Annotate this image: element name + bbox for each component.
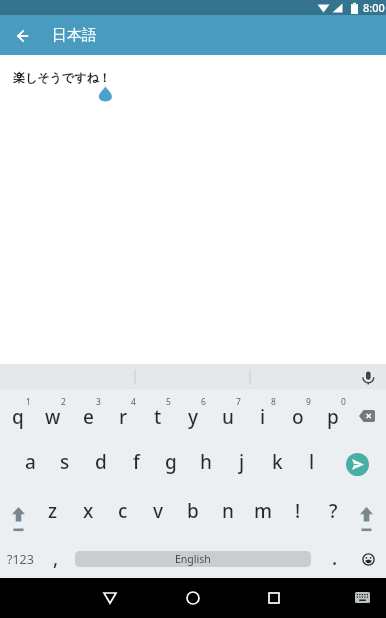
button[interactable]: x	[71, 491, 105, 531]
button[interactable]	[1, 498, 36, 540]
button[interactable]: a	[13, 442, 47, 482]
staticText: h	[200, 449, 212, 475]
staticText: 日本語	[52, 26, 97, 45]
button[interactable]: n	[211, 491, 245, 531]
button[interactable]: h	[189, 442, 223, 482]
button[interactable]	[7, 20, 38, 51]
staticText: j	[239, 449, 245, 475]
button[interactable]: English	[75, 551, 311, 567]
button[interactable]: b	[176, 491, 210, 531]
staticText: e	[83, 404, 94, 430]
button[interactable]	[256, 580, 292, 616]
staticText: l	[309, 449, 315, 475]
staticText: 8	[271, 396, 276, 408]
staticText: 8:00	[363, 0, 385, 15]
staticText: i	[260, 404, 266, 430]
button[interactable]: ?123	[3, 542, 38, 576]
staticText: o	[292, 404, 304, 430]
staticText: m	[254, 498, 272, 524]
staticText: 7	[236, 396, 241, 408]
button[interactable]: d	[84, 442, 118, 482]
button[interactable]	[349, 498, 384, 540]
button[interactable]: .	[318, 538, 352, 578]
button[interactable]: q	[1, 397, 35, 437]
button[interactable]: ?	[316, 491, 350, 531]
staticText: t	[154, 404, 162, 430]
staticText: k	[272, 449, 283, 475]
staticText: 4	[131, 396, 136, 408]
staticText: n	[222, 498, 234, 524]
staticText: g	[165, 449, 177, 475]
button[interactable]	[0, 364, 386, 389]
staticText: x	[83, 498, 94, 524]
button[interactable]	[349, 396, 385, 436]
staticText: w	[45, 404, 61, 430]
button[interactable]: e	[71, 397, 105, 437]
button[interactable]: s	[48, 442, 82, 482]
button[interactable]: !	[281, 491, 315, 531]
staticText: r	[119, 404, 128, 430]
staticText: 0	[341, 396, 346, 408]
button[interactable]: g	[154, 442, 188, 482]
button[interactable]: r	[106, 397, 140, 437]
staticText: ,	[53, 545, 59, 571]
button[interactable]: j	[225, 442, 259, 482]
button[interactable]: l	[295, 442, 329, 482]
staticText: ?123	[7, 551, 34, 568]
staticText: f	[133, 449, 140, 475]
button[interactable]	[351, 542, 385, 576]
staticText: z	[48, 498, 58, 524]
button[interactable]: k	[260, 442, 294, 482]
staticText: 6	[201, 396, 206, 408]
staticText: v	[153, 498, 164, 524]
staticText: English	[175, 552, 211, 566]
staticText: 楽しそうですね！	[13, 70, 111, 85]
staticText: s	[60, 449, 70, 475]
staticText: q	[12, 404, 24, 430]
button[interactable]: z	[36, 491, 70, 531]
staticText: .	[332, 545, 338, 571]
button[interactable]: w	[36, 397, 70, 437]
button[interactable]	[346, 453, 369, 476]
button[interactable]	[346, 581, 378, 613]
staticText: u	[222, 404, 234, 430]
staticText: b	[187, 498, 199, 524]
staticText: p	[327, 404, 339, 430]
staticText: 1	[26, 396, 31, 408]
staticText: 3	[96, 396, 101, 408]
button[interactable]	[92, 580, 128, 616]
staticText: 5	[166, 396, 171, 408]
staticText: 9	[306, 396, 311, 408]
button[interactable]: p	[316, 397, 350, 437]
staticText: 2	[61, 396, 66, 408]
button[interactable]: t	[141, 397, 175, 437]
button[interactable]: ,	[39, 538, 73, 578]
staticText: a	[25, 449, 36, 475]
button[interactable]: y	[176, 397, 210, 437]
button[interactable]: m	[246, 491, 280, 531]
button[interactable]: f	[119, 442, 153, 482]
button[interactable]: v	[141, 491, 175, 531]
button[interactable]	[175, 580, 211, 616]
staticText: c	[118, 498, 128, 524]
staticText: y	[188, 404, 199, 430]
button[interactable]: u	[211, 397, 245, 437]
button[interactable]: i	[246, 397, 280, 437]
button[interactable]: c	[106, 491, 140, 531]
staticText: d	[95, 449, 107, 475]
button[interactable]: o	[281, 397, 315, 437]
staticText: ?	[329, 498, 338, 524]
staticText: !	[295, 498, 301, 524]
